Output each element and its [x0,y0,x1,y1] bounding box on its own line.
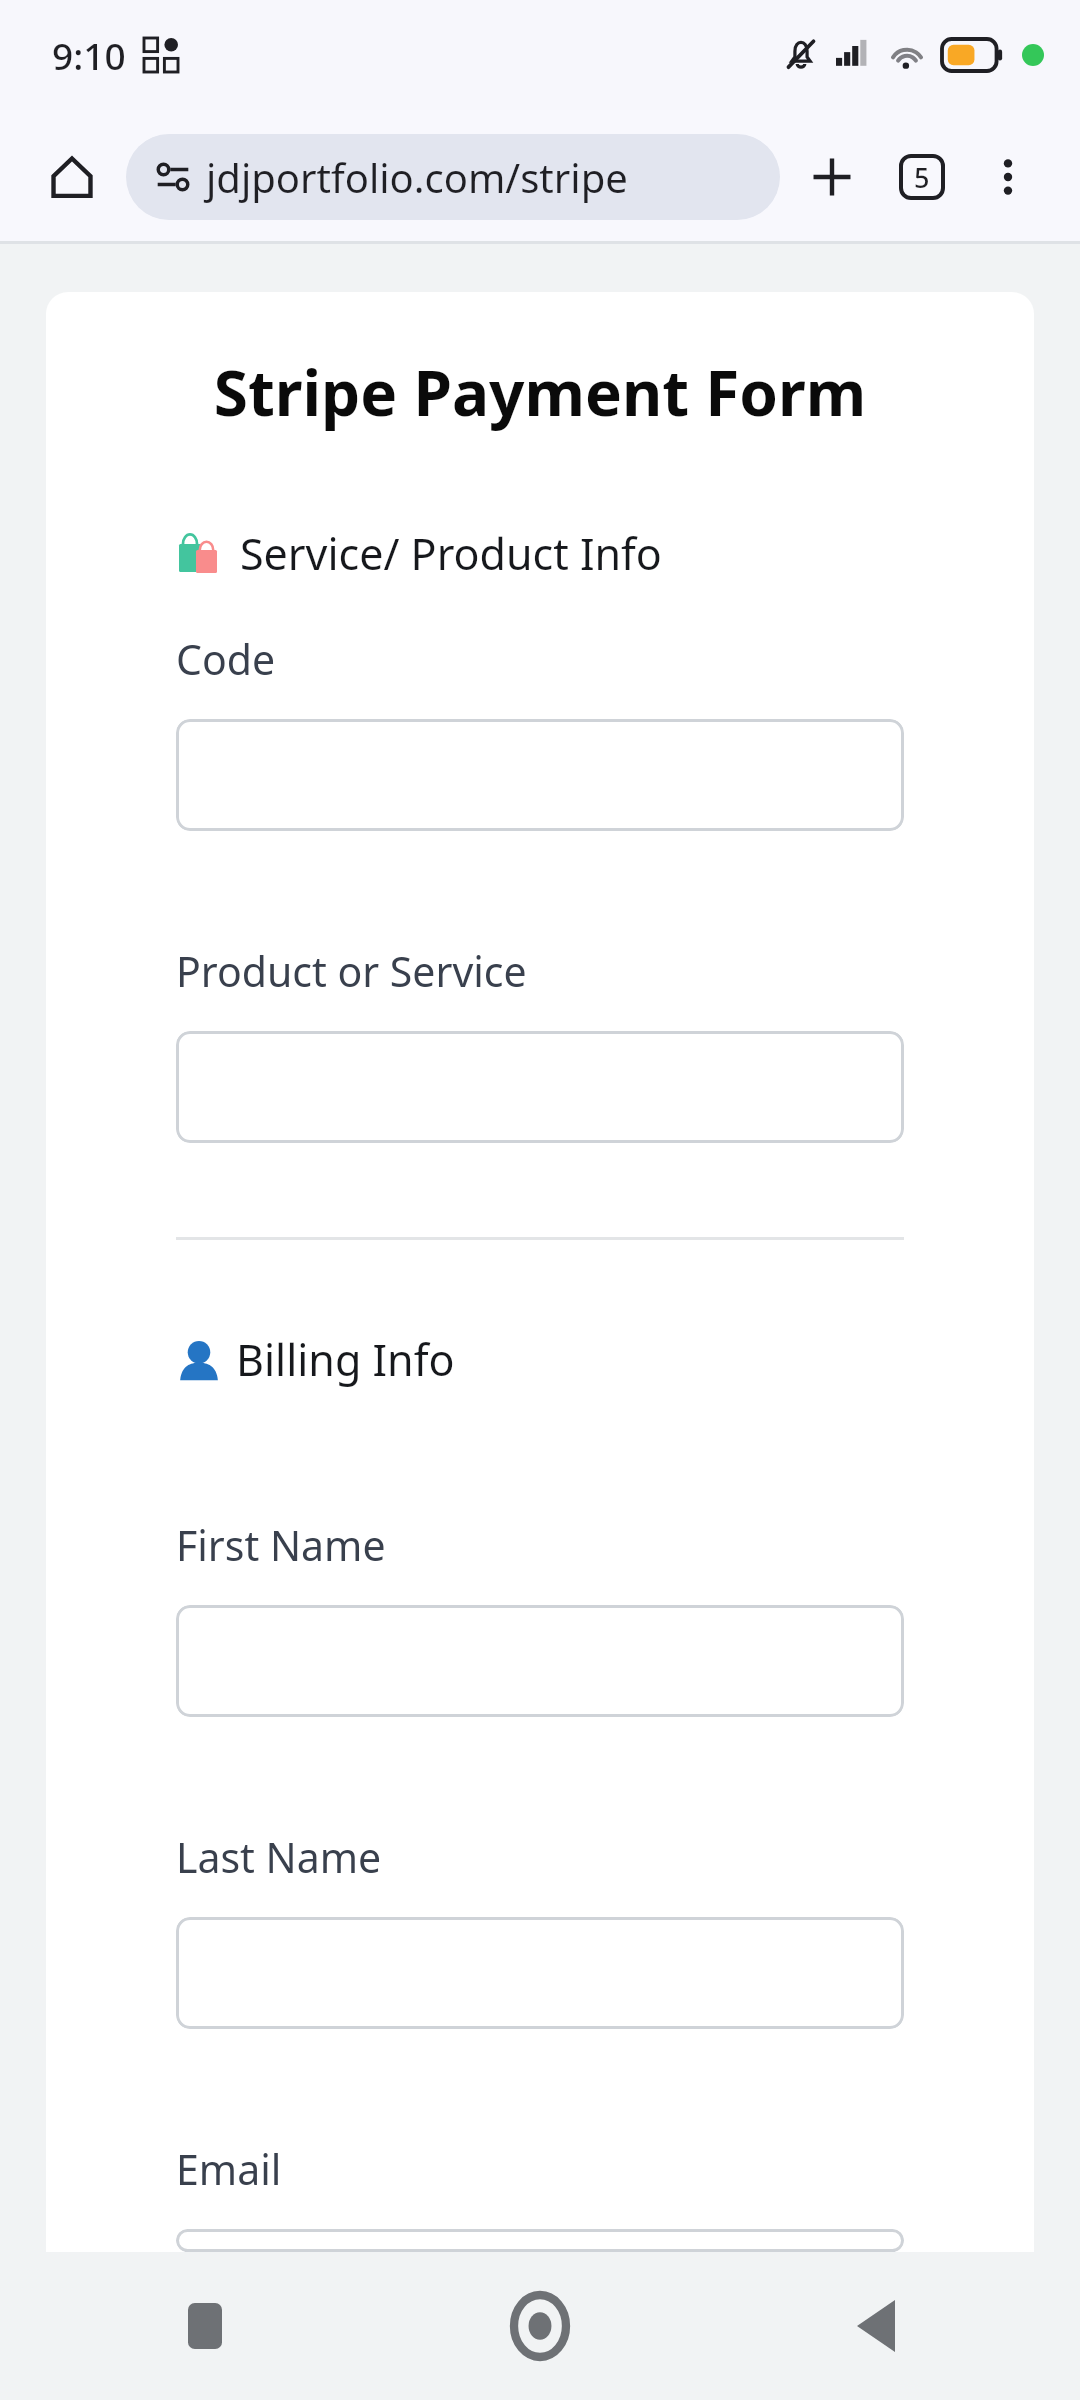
button[interactable] [176,1605,904,1717]
staticText: Product or Service [176,943,527,999]
button[interactable] [176,719,904,831]
button[interactable] [176,1917,904,2029]
button[interactable]: Back [820,2271,930,2381]
staticText: Stripe Payment Form [46,350,1034,434]
button[interactable]: Service/ Product Info [176,524,662,583]
staticText: Code [176,631,276,687]
button[interactable]: Home [485,2271,595,2381]
button[interactable]: Billing Info [176,1330,455,1389]
button[interactable]: New tab [794,139,870,215]
button[interactable]: More options [970,139,1046,215]
staticText: Last Name [176,1829,382,1885]
staticText: Service/ Product Info [240,524,662,583]
button[interactable] [176,1031,904,1143]
button[interactable]: Home [34,139,110,215]
staticText: Email [176,2141,282,2197]
staticText: Billing Info [236,1330,455,1389]
staticText: 9:10 [52,30,126,80]
button[interactable]: jdjportfolio.com/stripe [126,134,780,220]
button[interactable]: Tabs, 5 open [884,139,960,215]
button[interactable] [176,2229,904,2252]
button[interactable]: Recent apps [150,2271,260,2381]
staticText: jdjportfolio.com/stripe [206,150,628,204]
staticText: First Name [176,1517,386,1573]
staticText: 5 [914,159,930,196]
